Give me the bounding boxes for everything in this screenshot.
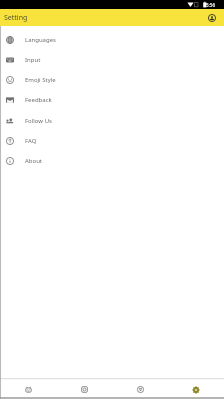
button[interactable]: Settings [168, 380, 224, 399]
staticText: Follow Us [25, 117, 52, 125]
staticText: Feedback [25, 96, 52, 104]
button[interactable]: About [0, 151, 224, 171]
button[interactable]: Languages [0, 30, 224, 50]
button[interactable]: Account [207, 13, 216, 22]
button[interactable]: Follow Us [0, 111, 224, 131]
button[interactable]: Themes [112, 380, 168, 399]
staticText: 5:56 [206, 2, 216, 8]
button[interactable]: Input [0, 50, 224, 70]
staticText: FAQ [25, 137, 37, 145]
button[interactable]: Feedback [0, 90, 224, 110]
staticText: About [25, 157, 43, 165]
staticText: Emoji Style [25, 76, 56, 84]
button[interactable]: FAQ [0, 131, 224, 151]
staticText: Input [25, 56, 41, 64]
button[interactable]: Emoji Style [0, 70, 224, 90]
button[interactable]: Stickers [56, 380, 112, 399]
staticText: Setting [4, 13, 28, 23]
button[interactable]: Keyboard [0, 380, 56, 399]
staticText: Languages [25, 36, 56, 44]
